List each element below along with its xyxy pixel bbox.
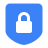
button[interactable]: Security <box>0 0 48 48</box>
